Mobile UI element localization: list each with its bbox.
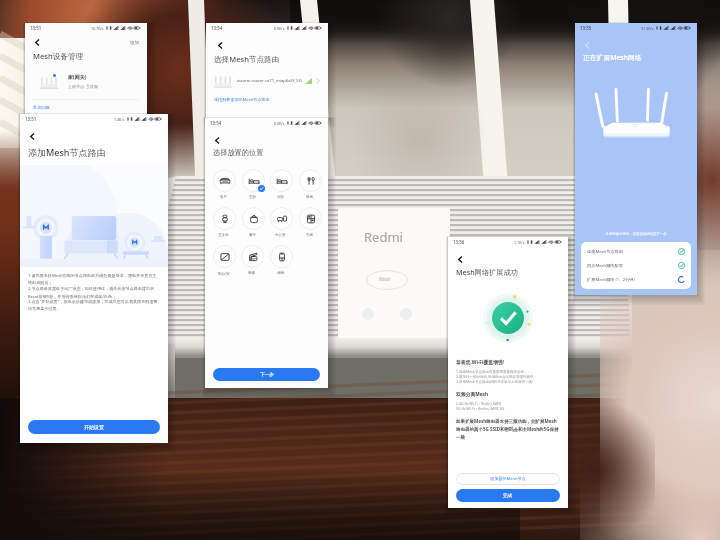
button[interactable]: xiaomi-router-ra71_miap6a5f_5G bbox=[214, 74, 320, 88]
staticText: 恭喜您,Wi-Fi覆盖增强! bbox=[456, 359, 504, 366]
button[interactable]: 办公室 bbox=[267, 206, 294, 237]
staticText: 餐厅 bbox=[249, 233, 256, 237]
staticText: 务必请耐心等待，页面自动跳转至下一步 bbox=[575, 232, 697, 236]
button[interactable]: 添加 bbox=[127, 38, 142, 48]
staticText: 13:55 bbox=[580, 25, 592, 31]
staticText: 2.节点路由器需处于出厂状态，如已使用过，请先长按节点路由背后的Reset按键5… bbox=[28, 286, 160, 299]
staticText: 选择Mesh节点路由 bbox=[214, 54, 280, 64]
staticText: 阁楼 bbox=[248, 271, 255, 275]
button[interactable]: 客厅 bbox=[210, 168, 237, 199]
button[interactable]: 书房 bbox=[296, 206, 323, 237]
staticText: 次卧 bbox=[277, 195, 284, 199]
staticText: 0.0K/s bbox=[274, 121, 285, 126]
staticText: 办公室 bbox=[275, 233, 286, 237]
staticText: 选择放置的位置 bbox=[213, 148, 264, 157]
button[interactable]: Back bbox=[30, 36, 44, 49]
button[interactable]: Back bbox=[453, 252, 467, 266]
staticText: 1.4K/s bbox=[114, 117, 125, 122]
staticText: 储物 bbox=[277, 271, 284, 275]
staticText: 完成 bbox=[503, 493, 513, 499]
staticText: 如果扩展Mesh路由器支持三频功能，则扩展Mesh路由器的两个5G SSID和密… bbox=[456, 418, 560, 440]
staticText: 添加 bbox=[130, 40, 139, 46]
staticText: Mesh设备管理 bbox=[33, 51, 84, 61]
staticText: 双频分离Mesh bbox=[456, 391, 489, 398]
staticText: 主卧 bbox=[249, 195, 256, 199]
staticText: 阳台/室 bbox=[218, 271, 230, 276]
button[interactable]: 常见问题 bbox=[33, 105, 50, 110]
button[interactable]: 次卧 bbox=[267, 168, 294, 199]
staticText: 上级节点: 互联网 bbox=[68, 84, 99, 89]
staticText: 1.1K/s bbox=[514, 240, 525, 245]
staticText: 13:54 bbox=[211, 25, 223, 31]
button[interactable]: 家(网关) bbox=[33, 70, 139, 92]
button[interactable]: 下一步 bbox=[213, 368, 320, 381]
staticText: 13:56 bbox=[453, 239, 465, 245]
staticText: 添加新的Mesh节点 bbox=[490, 476, 526, 482]
staticText: Redmi bbox=[364, 228, 403, 246]
staticText: 正在扩展Mesh网络 bbox=[583, 53, 642, 62]
button[interactable]: 未找到要添加的Mesh节点路由 bbox=[214, 97, 270, 103]
button[interactable]: 阁楼 bbox=[238, 244, 265, 275]
staticText: 卫生间 bbox=[218, 233, 229, 237]
button[interactable]: Back bbox=[25, 129, 39, 143]
staticText: 书房 bbox=[306, 233, 313, 237]
staticText: 常见问题 bbox=[33, 105, 50, 110]
button[interactable]: 完成 bbox=[456, 489, 560, 502]
staticText: 16.7K/s bbox=[91, 26, 104, 31]
staticText: 3.点击"开始设置"，按提示步骤完成添加，完成后您可以将其摆放到需要信号覆盖的位… bbox=[28, 299, 160, 312]
staticText: 31.3K/s bbox=[641, 26, 654, 31]
staticText: 3.新增Mesh节点路由的Wi-Fi信息与之前保持一致! bbox=[456, 379, 533, 384]
staticText: 2.重等待一段时间后,新增路由会出现在管理列表中。 bbox=[456, 374, 537, 379]
staticText: 家(网关) bbox=[68, 74, 87, 81]
staticText: 下一步 bbox=[260, 372, 274, 378]
staticText: Mesh网络扩展成功 bbox=[456, 267, 518, 277]
staticText: Mesh bbox=[379, 276, 391, 282]
staticText: 1.新建Mesh节点路由器重置需要重置的名称。 bbox=[456, 369, 528, 374]
button[interactable]: 主卧 bbox=[239, 168, 266, 199]
staticText: 扩展Mesh网络 (1 - 2分钟) bbox=[587, 277, 635, 283]
staticText: 厨房 bbox=[306, 195, 313, 199]
staticText: 开始设置 bbox=[84, 424, 104, 430]
button[interactable]: 开始设置 bbox=[28, 420, 160, 434]
button[interactable]: Back bbox=[580, 38, 594, 52]
staticText: 1.请先将支持Mesh功能的节点路由器升级至最新版本，通电并放置在主路由器附近； bbox=[28, 273, 160, 286]
staticText: 13:54 bbox=[210, 120, 222, 126]
staticText: 未找到要添加的Mesh节点路由 bbox=[214, 97, 270, 103]
button[interactable]: 厨房 bbox=[296, 168, 323, 199]
button[interactable]: 储物 bbox=[267, 244, 294, 275]
button[interactable]: Back bbox=[213, 38, 227, 52]
button[interactable]: 添加新的Mesh节点 bbox=[456, 473, 560, 485]
button[interactable]: Back bbox=[210, 133, 224, 147]
staticText: xiaomi-router-ra71_miap6a5f_5G bbox=[237, 78, 302, 84]
button[interactable]: 阳台/室 bbox=[210, 244, 237, 276]
button[interactable]: 餐厅 bbox=[239, 206, 266, 237]
button[interactable]: 卫生间 bbox=[210, 206, 237, 237]
staticText: 添加Mesh节点路由 bbox=[28, 146, 106, 158]
staticText: 13:51 bbox=[25, 116, 37, 122]
staticText: 同步Mesh网络配置 bbox=[587, 263, 623, 269]
staticText: 0.0K/s bbox=[274, 26, 285, 31]
staticText: 5G Hz Wi-Fi：Redmi_8AF8_5G bbox=[456, 406, 505, 411]
staticText: 13:51 bbox=[30, 25, 42, 31]
staticText: 2.4G Hz Wi-Fi：Redmi_8AF8 bbox=[456, 401, 502, 406]
staticText: 客厅 bbox=[220, 195, 227, 199]
staticText: 连接Mesh节点路由 bbox=[587, 249, 623, 255]
